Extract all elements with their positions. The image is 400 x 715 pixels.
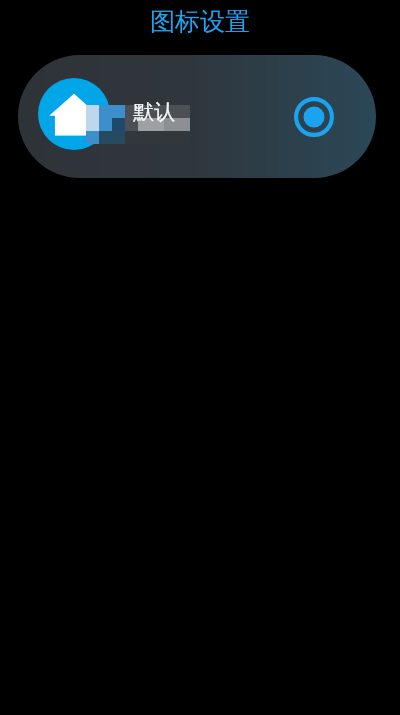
staticText: 默认 — [133, 99, 175, 125]
button[interactable]: 默认 — [18, 55, 376, 178]
button[interactable]: 选择默认图标 — [290, 93, 338, 141]
staticText: 图标设置 — [150, 6, 250, 37]
